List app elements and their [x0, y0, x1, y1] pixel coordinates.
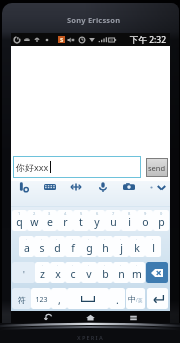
staticText: ·: [120, 237, 122, 242]
staticText: 你好xxx: [16, 161, 49, 173]
staticText: ·: [42, 263, 44, 268]
staticText: S: [60, 36, 64, 43]
staticText: 4: [64, 211, 67, 216]
button[interactable]: Keyboard layout: [44, 181, 56, 193]
button[interactable]: .: [109, 288, 125, 309]
staticText: 9: [144, 211, 147, 216]
staticText: 8: [128, 211, 131, 216]
button[interactable]: y: [89, 210, 105, 231]
staticText: y: [94, 215, 100, 229]
button[interactable]: Voice input: [97, 181, 109, 193]
button[interactable]: f: [65, 236, 81, 257]
button[interactable]: Resize keyboard: [70, 181, 82, 193]
staticText: ·: [104, 263, 106, 268]
button[interactable]: h: [97, 236, 113, 257]
staticText: 123: [35, 295, 48, 305]
button[interactable]: t: [73, 210, 89, 231]
button[interactable]: r: [57, 210, 73, 231]
staticText: p: [158, 215, 165, 229]
staticText: a: [24, 241, 30, 255]
button[interactable]: k: [129, 236, 145, 257]
staticText: ·: [57, 263, 59, 268]
staticText: r: [63, 215, 68, 229]
button[interactable]: x: [50, 262, 65, 283]
staticText: XPERIA: [77, 334, 104, 341]
staticText: 7: [112, 211, 115, 216]
staticText: x: [55, 267, 61, 281]
button[interactable]: c: [65, 262, 81, 283]
staticText: ·: [136, 263, 138, 268]
button[interactable]: d: [49, 236, 65, 257]
staticText: ·: [41, 237, 43, 242]
staticText: 0: [160, 211, 163, 216]
button[interactable]: ,: [51, 288, 67, 309]
staticText: i: [128, 215, 131, 229]
button[interactable]: send: [146, 158, 168, 177]
staticText: .: [116, 293, 119, 307]
staticText: ·: [136, 237, 138, 242]
staticText: ·: [152, 237, 154, 242]
button[interactable]: Handwriting: [18, 181, 30, 193]
staticText: ·: [26, 237, 28, 242]
button[interactable]: n: [113, 262, 129, 283]
button[interactable]: u: [105, 210, 121, 231]
staticText: n: [118, 267, 125, 281]
staticText: e: [47, 215, 53, 229]
button[interactable]: [67, 288, 109, 309]
button[interactable]: o: [137, 210, 153, 231]
staticText: w: [30, 215, 39, 229]
staticText: /英: [136, 297, 143, 303]
button[interactable]: 你好xxx: [13, 156, 141, 178]
staticText: ·: [88, 237, 90, 242]
button[interactable]: p: [153, 210, 169, 231]
staticText: ·: [56, 237, 58, 242]
button[interactable]: ': [12, 262, 35, 283]
staticText: f: [71, 241, 75, 255]
button[interactable]: 123: [31, 288, 51, 309]
button[interactable]: a: [19, 236, 34, 257]
staticText: k: [134, 241, 140, 255]
staticText: 中: [128, 294, 136, 304]
button[interactable]: w: [27, 210, 42, 231]
staticText: 5: [80, 211, 83, 216]
button[interactable]: Home: [85, 312, 96, 323]
staticText: ·: [72, 237, 74, 242]
button[interactable]: Recent apps: [128, 312, 139, 323]
button[interactable]: 符: [12, 288, 31, 309]
staticText: ·: [120, 263, 122, 268]
staticText: c: [70, 267, 76, 281]
button[interactable]: j: [113, 236, 129, 257]
staticText: ·: [88, 263, 90, 268]
button[interactable]: Hide keyboard: [156, 182, 167, 193]
button[interactable]: Enter: [147, 288, 168, 309]
staticText: send: [148, 163, 166, 173]
button[interactable]: Backspace: [146, 262, 168, 283]
button[interactable]: l: [145, 236, 161, 257]
staticText: d: [54, 241, 61, 255]
button[interactable]: q: [12, 210, 27, 231]
staticText: Sony Ericsson: [67, 15, 121, 25]
staticText: ·: [72, 263, 74, 268]
button[interactable]: v: [81, 262, 97, 283]
staticText: u: [110, 215, 117, 229]
staticText: 符: [18, 295, 26, 305]
staticText: v: [86, 267, 92, 281]
staticText: ·: [104, 237, 106, 242]
button[interactable]: Back: [43, 312, 54, 323]
button[interactable]: s: [34, 236, 49, 257]
button[interactable]: 中: [126, 288, 145, 309]
staticText: 2: [33, 211, 36, 216]
button[interactable]: z: [35, 262, 50, 283]
button[interactable]: b: [97, 262, 113, 283]
staticText: ': [23, 269, 25, 280]
staticText: g: [86, 241, 93, 255]
staticText: b: [102, 267, 109, 281]
button[interactable]: e: [42, 210, 57, 231]
staticText: ,: [58, 293, 61, 307]
button[interactable]: m: [129, 262, 145, 283]
button[interactable]: g: [81, 236, 97, 257]
staticText: z: [40, 267, 45, 281]
button[interactable]: i: [121, 210, 137, 231]
button[interactable]: Camera: [123, 181, 135, 193]
staticText: o: [142, 215, 149, 229]
